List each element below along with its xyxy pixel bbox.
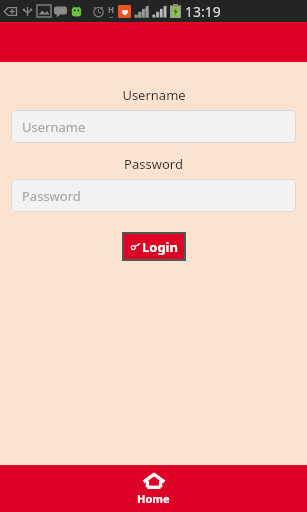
button[interactable]: Home xyxy=(0,465,307,512)
staticText: ⇅ xyxy=(109,15,115,18)
button[interactable]: Password xyxy=(11,179,296,212)
staticText: Username xyxy=(22,118,86,136)
button[interactable]: Username xyxy=(11,110,296,143)
staticText: H xyxy=(108,4,115,15)
staticText: 13:19 xyxy=(185,2,221,21)
staticText: Username xyxy=(122,86,186,104)
button[interactable]: Login xyxy=(124,234,184,259)
staticText: Password xyxy=(124,155,183,173)
other: Home xyxy=(143,472,165,489)
staticText: Password xyxy=(22,187,81,205)
staticText: Home xyxy=(137,491,170,506)
staticText: Login xyxy=(142,238,178,256)
